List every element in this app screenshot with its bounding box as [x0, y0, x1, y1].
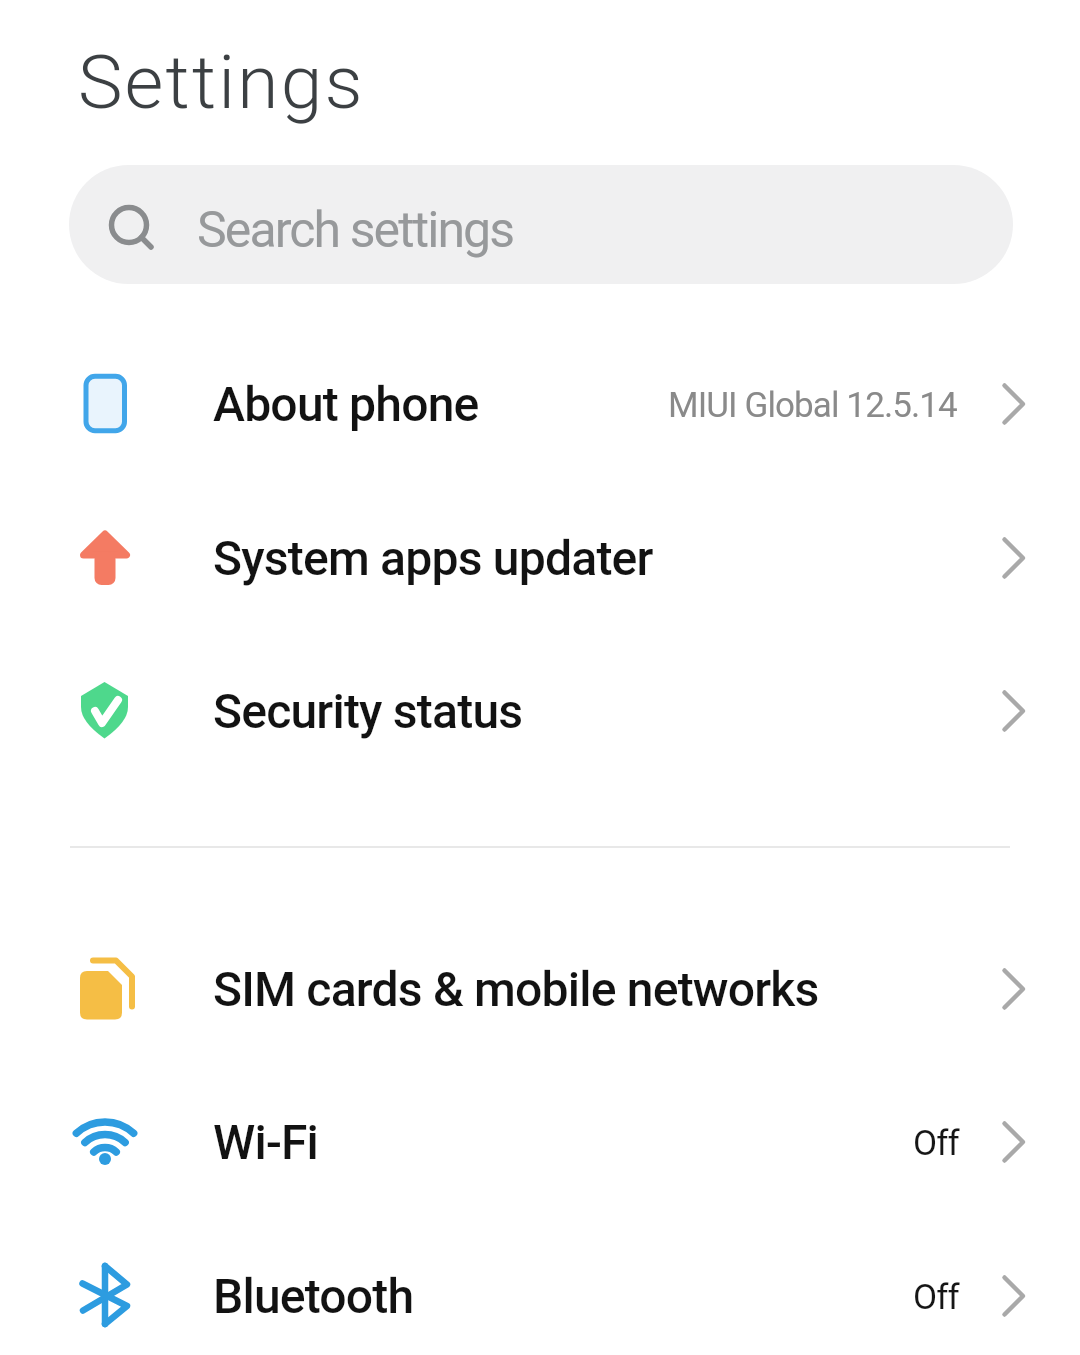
staticText: Settings [78, 38, 365, 126]
button[interactable]: SIM cards & mobile networks [0, 912, 1080, 1065]
button[interactable]: Search settings [69, 165, 1013, 284]
button[interactable]: Security status [0, 634, 1080, 787]
staticText: Wi-Fi [213, 1114, 318, 1170]
staticText: Off [913, 1277, 959, 1318]
staticText: Security status [213, 683, 523, 739]
staticText: Search settings [197, 201, 514, 260]
staticText: MIUI Global 12.5.14 [668, 385, 957, 426]
button[interactable]: Bluetooth [0, 1219, 1080, 1355]
staticText: Bluetooth [213, 1268, 414, 1324]
staticText: System apps updater [213, 530, 653, 586]
button[interactable]: System apps updater [0, 481, 1080, 634]
staticText: Off [913, 1123, 959, 1164]
button[interactable]: Wi-Fi [0, 1065, 1080, 1218]
staticText: SIM cards & mobile networks [213, 961, 819, 1017]
button[interactable]: About phone [0, 327, 1080, 480]
staticText: About phone [213, 376, 479, 432]
